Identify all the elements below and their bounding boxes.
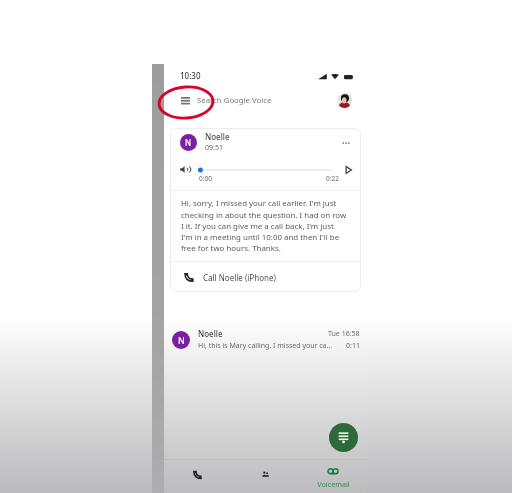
staticText: 09:51 [205,143,223,153]
other: Battery [344,73,354,80]
button[interactable]: Contacts [231,460,299,493]
staticText: Call Noelle (iPhone) [203,272,276,283]
staticText: Hi, sorry, I missed your call earlier. I… [181,198,347,253]
staticText: Search Google Voice [197,95,272,106]
other: Signal [318,73,327,80]
staticText: Voicemail [317,479,350,489]
other: Calls [193,470,202,479]
staticText: Hi, this is Mary calling. I missed your … [198,341,333,351]
other: Menu [181,96,190,105]
button[interactable]: Speaker [180,165,191,174]
staticText: N [185,137,192,148]
button[interactable]: N [170,128,361,292]
button[interactable]: Compose voicemail [329,423,358,452]
button[interactable]: Voicemail [299,460,367,493]
button[interactable]: Menu [171,89,360,112]
other: Voicemail [328,466,338,476]
other: Wi-Fi [331,73,339,80]
staticText: 0:22 [326,174,339,183]
button[interactable]: More options [339,136,352,149]
button[interactable]: Calls [164,460,231,493]
button[interactable]: Call Noelle (iPhone) [170,262,361,292]
staticText: Tue 16:58 [328,329,360,339]
staticText: Noelle [198,328,223,339]
button[interactable]: Account [337,93,352,108]
button[interactable]: Play [345,166,352,174]
staticText: 10:30 [180,70,201,81]
staticText: 0:11 [346,341,360,351]
staticText: 0:00 [199,174,212,183]
button[interactable]: N [164,328,367,351]
staticText: N [178,334,185,346]
staticText: Noelle [205,131,230,142]
other: Contacts [261,470,270,479]
